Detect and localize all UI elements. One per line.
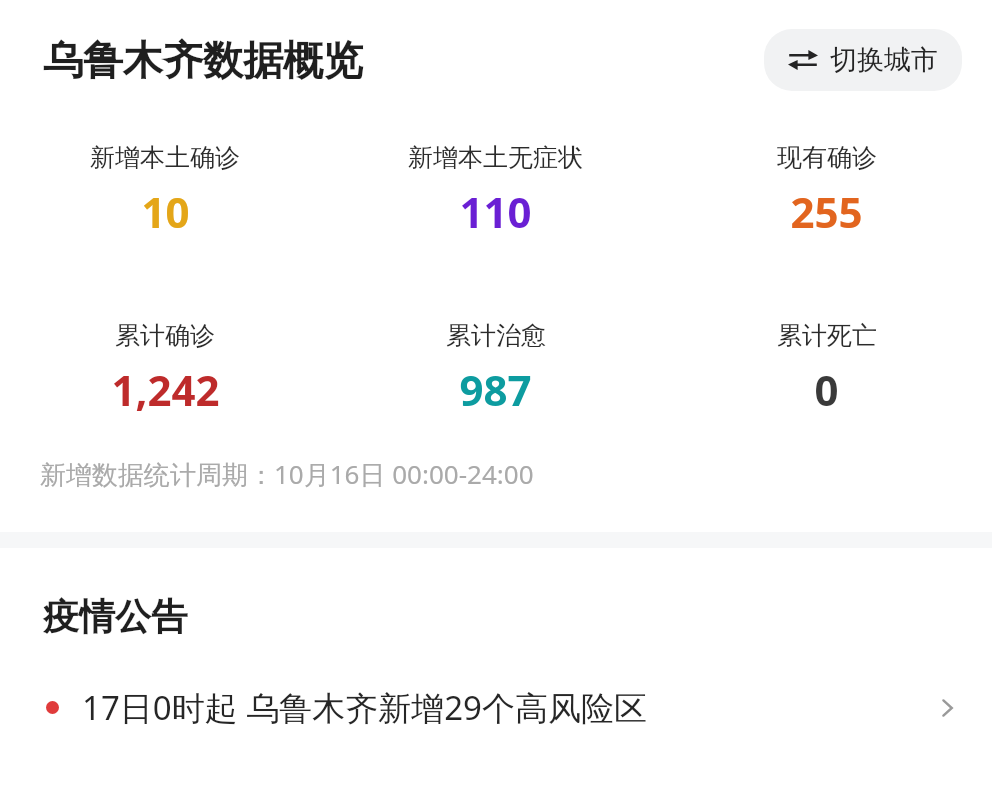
staticText: 切换城市 xyxy=(830,43,938,77)
button[interactable]: 现有确诊 xyxy=(661,142,992,240)
staticText: 疫情公告 xyxy=(43,594,187,639)
staticText: 1,242 xyxy=(111,361,220,418)
staticText: 17日0时起 乌鲁木齐新增29个高风险区 xyxy=(82,685,930,730)
staticText: 0 xyxy=(814,361,839,418)
staticText: 10 xyxy=(141,183,190,240)
staticText: 现有确诊 xyxy=(777,142,877,173)
button[interactable]: 累计治愈 xyxy=(330,320,661,418)
other: 查看公告详情 xyxy=(930,691,964,725)
staticText: 255 xyxy=(790,183,863,240)
button[interactable]: 17日0时起 乌鲁木齐新增29个高风险区 xyxy=(0,679,992,736)
button[interactable]: 累计确诊 xyxy=(0,320,330,418)
staticText: 乌鲁木齐数据概览 xyxy=(43,35,363,85)
staticText: 新增本土确诊 xyxy=(90,142,240,173)
staticText: 新增数据统计周期：10月16日 00:00-24:00 xyxy=(40,456,534,492)
staticText: 987 xyxy=(459,361,532,418)
staticText: 累计治愈 xyxy=(446,320,546,351)
staticText: 累计死亡 xyxy=(777,320,877,351)
button[interactable]: 新增本土确诊 xyxy=(0,142,330,240)
staticText: 110 xyxy=(459,183,532,240)
button[interactable]: 新增本土无症状 xyxy=(330,142,661,240)
button[interactable]: 切换城市 xyxy=(764,29,962,91)
button[interactable]: 累计死亡 xyxy=(661,320,992,418)
staticText: 累计确诊 xyxy=(115,320,215,351)
staticText: 新增本土无症状 xyxy=(408,142,583,173)
